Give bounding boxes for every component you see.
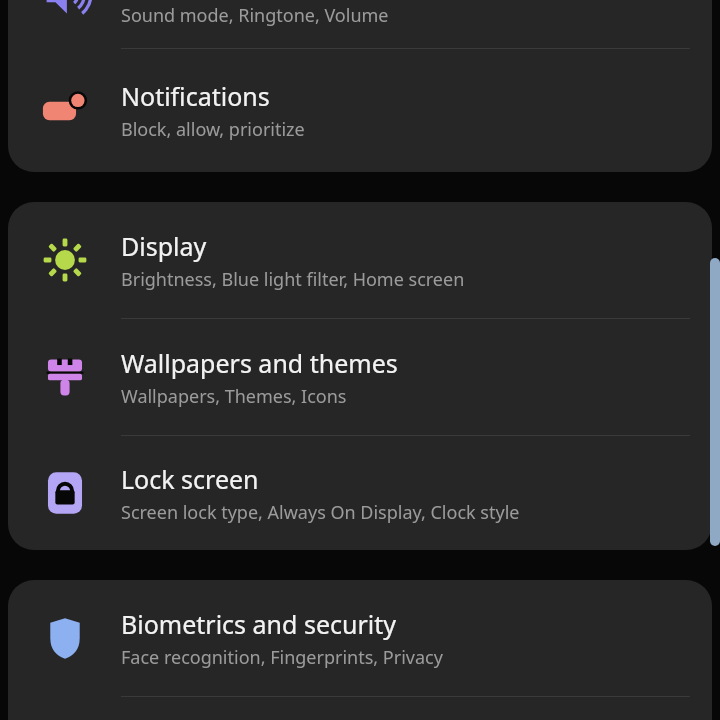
staticText: Display xyxy=(121,229,207,263)
button[interactable]: Wallpapers and themes xyxy=(8,319,712,435)
staticText: Brightness, Blue light filter, Home scre… xyxy=(121,267,465,292)
staticText: Wallpapers and themes xyxy=(121,346,398,380)
staticText: Biometrics and security xyxy=(121,607,397,641)
staticText: Block, allow, prioritize xyxy=(121,117,305,142)
staticText: Wallpapers, Themes, Icons xyxy=(121,384,347,409)
staticText: Sound mode, Ringtone, Volume xyxy=(121,3,389,28)
button[interactable]: Biometrics and security xyxy=(8,580,712,696)
other: Sounds and vibration xyxy=(44,0,88,18)
button[interactable]: Lock screen xyxy=(8,436,712,550)
staticText: Face recognition, Fingerprints, Privacy xyxy=(121,645,443,670)
button[interactable]: Sounds and vibration xyxy=(8,0,712,48)
staticText: Notifications xyxy=(121,79,270,113)
button[interactable]: Notifications xyxy=(8,49,712,172)
button[interactable]: Display xyxy=(8,202,712,318)
staticText: Screen lock type, Always On Display, Clo… xyxy=(121,500,520,525)
staticText: Lock screen xyxy=(121,462,259,496)
